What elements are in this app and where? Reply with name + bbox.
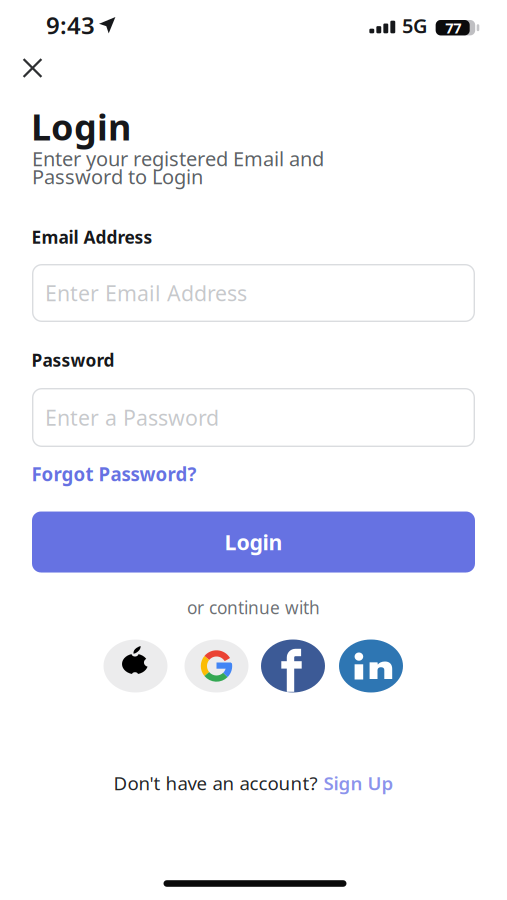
- staticText: Enter a Password: [45, 403, 219, 432]
- staticText: 77: [445, 18, 461, 37]
- staticText: Enter your registered Email and: [32, 145, 324, 172]
- staticText: 9:43: [46, 9, 95, 41]
- staticText: Don't have an account?: [113, 771, 317, 795]
- button[interactable]: Password: [32, 388, 475, 447]
- staticText: 5G: [402, 12, 428, 39]
- button[interactable]: Email Address: [32, 264, 475, 322]
- staticText: Sign Up: [323, 771, 393, 795]
- button[interactable]: Continue with Google: [184, 639, 248, 692]
- button[interactable]: Continue with Facebook: [261, 639, 325, 692]
- button[interactable]: Continue with LinkedIn: [339, 639, 403, 692]
- staticText: Enter Email Address: [45, 279, 247, 307]
- staticText: Forgot Password?: [31, 462, 196, 486]
- staticText: Login: [224, 528, 282, 556]
- button[interactable]: Continue with Apple: [103, 639, 167, 692]
- button[interactable]: Login: [32, 511, 475, 572]
- staticText: Email Address: [31, 225, 152, 248]
- button[interactable]: Forgot Password?: [31, 462, 196, 486]
- staticText: Password to Login: [32, 163, 203, 190]
- staticText: Password: [31, 348, 114, 371]
- staticText: Login: [31, 103, 131, 150]
- button[interactable]: Close: [13, 48, 52, 88]
- button[interactable]: Sign Up: [323, 771, 393, 795]
- staticText: or continue with: [187, 596, 320, 619]
